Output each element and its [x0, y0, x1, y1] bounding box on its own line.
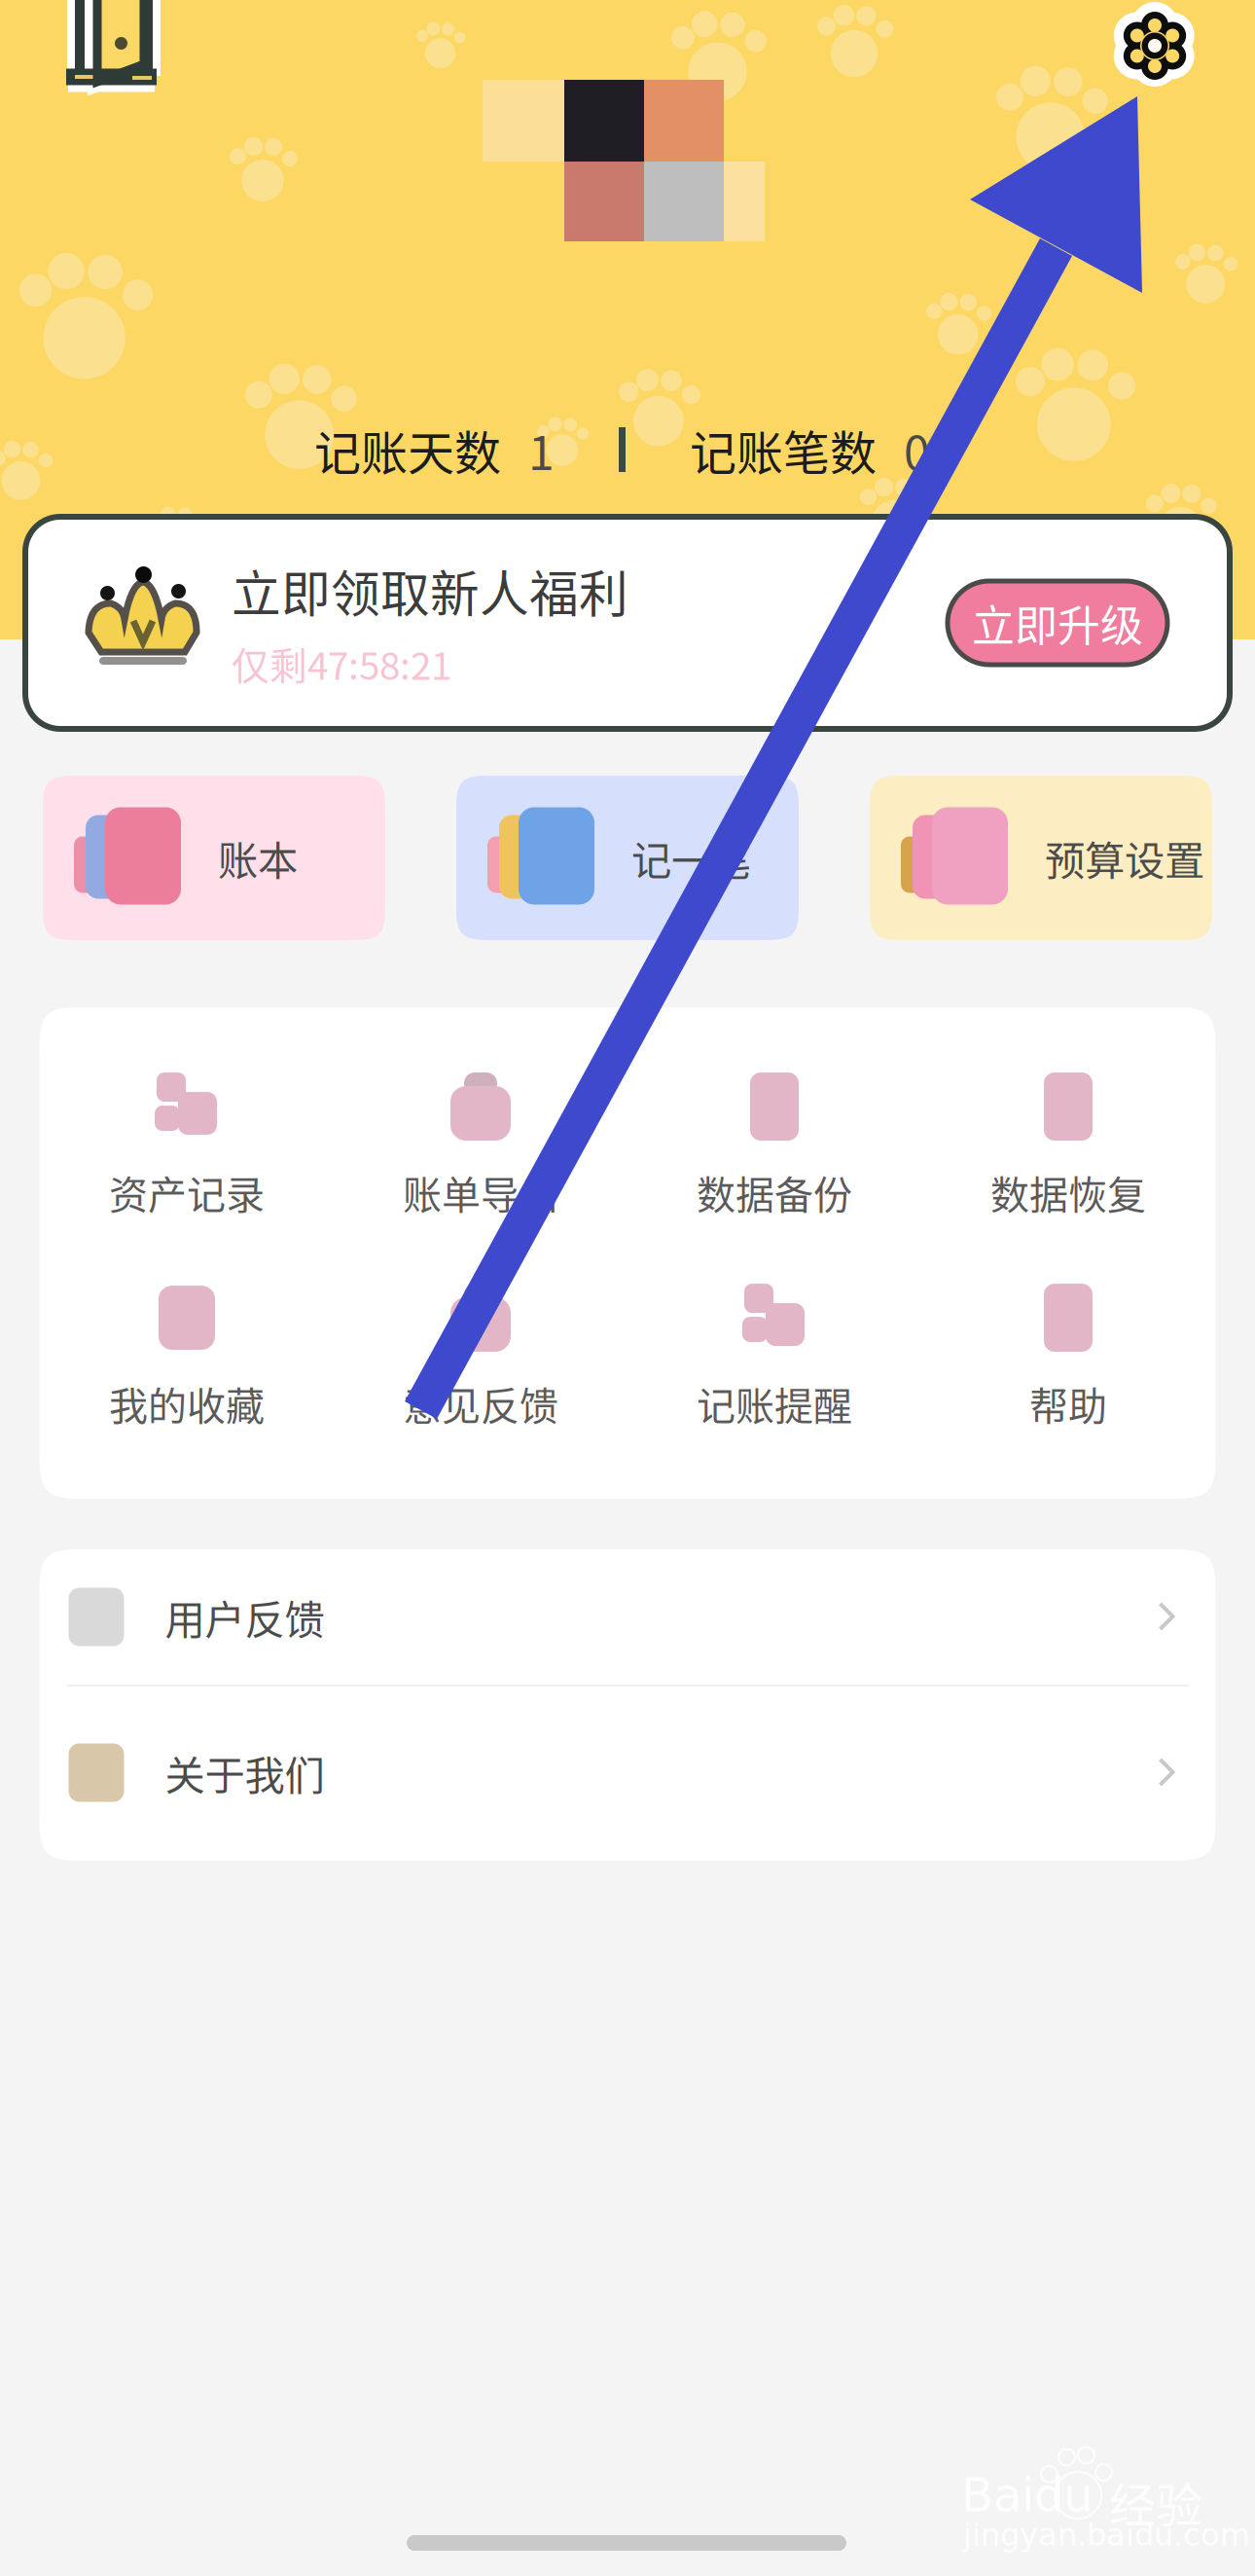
button[interactable]: Exit — [60, 0, 161, 95]
staticText: 记账提醒 — [697, 1375, 852, 1431]
button[interactable]: 帮助 — [921, 1265, 1215, 1450]
staticText: 仅剩47:58:21 — [232, 636, 451, 691]
button[interactable]: 立即领取新人福利 — [25, 517, 1230, 729]
staticText: 资产记录 — [109, 1164, 265, 1220]
staticText: 我的收藏 — [109, 1375, 265, 1431]
staticText: 帮助 — [1029, 1375, 1107, 1431]
button[interactable]: 记账提醒 — [627, 1265, 921, 1450]
button[interactable]: 账本 — [43, 776, 385, 940]
staticText: 记一笔 — [631, 829, 751, 887]
staticText: 记账笔数 — [690, 416, 877, 483]
staticText: 意见反馈 — [403, 1375, 558, 1431]
button[interactable]: 账单导出 — [334, 1054, 627, 1239]
button[interactable]: 数据备份 — [627, 1054, 921, 1239]
staticText: 预算设置 — [1045, 829, 1204, 887]
staticText: 立即领取新人福利 — [232, 555, 628, 626]
button[interactable]: 关于我们 — [39, 1705, 1216, 1840]
button[interactable]: 我的收藏 — [40, 1265, 334, 1450]
staticText: 立即升级 — [972, 592, 1143, 654]
staticText: 用户反馈 — [165, 1588, 324, 1646]
staticText: 账单导出 — [403, 1164, 558, 1220]
staticText: 关于我们 — [165, 1744, 324, 1802]
button[interactable]: 资产记录 — [40, 1054, 334, 1239]
button[interactable]: Settings — [1117, 8, 1193, 84]
button[interactable]: 意见反馈 — [334, 1265, 627, 1450]
staticText: 数据备份 — [697, 1164, 852, 1220]
button[interactable]: 记一笔 — [456, 776, 799, 940]
staticText: jingyan.baidu.com — [963, 2517, 1250, 2553]
staticText: 1 — [528, 416, 555, 483]
button[interactable]: 数据恢复 — [921, 1054, 1215, 1239]
staticText: 记账天数 — [314, 416, 501, 483]
staticText: 0 — [904, 416, 930, 483]
button[interactable]: 预算设置 — [870, 776, 1212, 940]
button[interactable]: 用户反馈 — [39, 1549, 1216, 1685]
staticText: 数据恢复 — [990, 1164, 1146, 1220]
staticText: 账本 — [218, 829, 298, 887]
staticText: 经验 — [1109, 2468, 1202, 2536]
staticText: Baidu — [961, 2468, 1093, 2522]
